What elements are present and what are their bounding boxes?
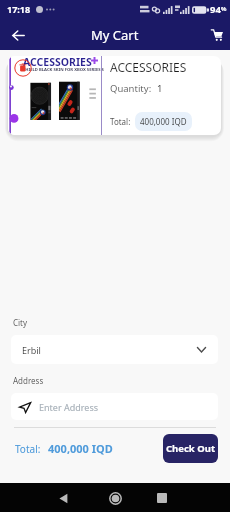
staticText: City	[13, 317, 28, 328]
staticText: Address	[13, 375, 44, 386]
staticText: ACCESSORIES	[23, 56, 92, 69]
button[interactable]: Back	[5, 22, 31, 48]
button[interactable]: Enter Address	[11, 393, 218, 420]
staticText: 1	[157, 82, 163, 95]
staticText: Enter Address	[39, 401, 99, 413]
staticText: %	[221, 5, 227, 13]
staticText: SHIELD BLACK SKIN FOR XBOX SERIES S	[23, 67, 104, 73]
button[interactable]: Recent apps	[148, 484, 176, 512]
staticText: Total:	[15, 442, 41, 456]
staticText: Quantity:	[110, 82, 152, 95]
staticText: 17:18	[7, 3, 31, 15]
staticText: 400,000 IQD	[140, 116, 187, 127]
staticText: Total:	[110, 116, 131, 127]
button[interactable]: Back	[50, 484, 78, 512]
button[interactable]: Erbil	[11, 335, 218, 364]
button[interactable]: Shopping cart	[206, 24, 228, 46]
button[interactable]: Delete item	[14, 59, 32, 77]
staticText: Erbil	[22, 344, 41, 356]
button[interactable]: Check Out	[163, 434, 218, 463]
staticText: 94	[210, 3, 221, 16]
staticText: Check Out	[166, 442, 216, 455]
button[interactable]: Home	[101, 484, 129, 512]
staticText: ACCESSORIES	[110, 59, 187, 75]
staticText: 400,000 IQD	[48, 441, 113, 456]
staticText: My Cart	[91, 26, 139, 44]
